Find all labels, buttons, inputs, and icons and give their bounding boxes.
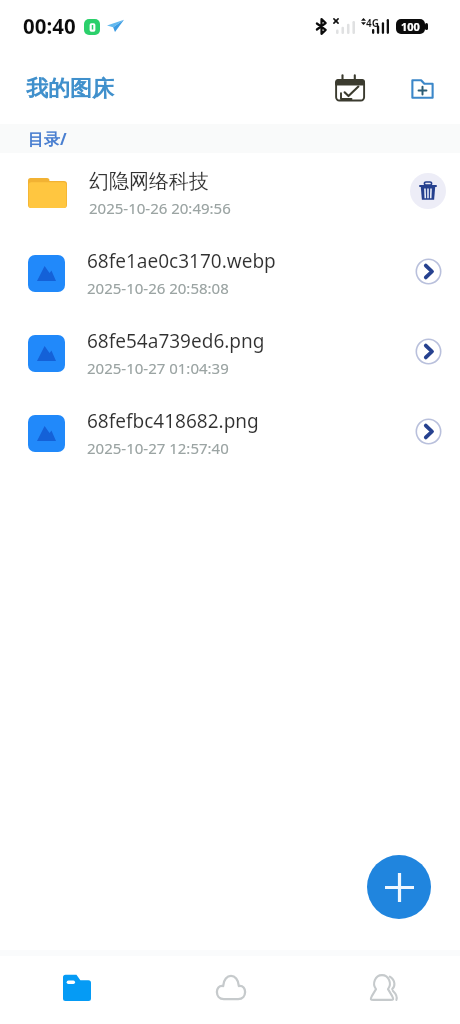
- button[interactable]: Schedule: [320, 66, 379, 110]
- staticText: 幻隐网络科技: [89, 169, 209, 194]
- staticText: 2025-10-26 20:49:56: [89, 198, 231, 218]
- staticText: 我的图床: [26, 75, 114, 103]
- button[interactable]: 68fefbc418682.png: [0, 393, 460, 473]
- button[interactable]: 幻隐网络科技: [0, 153, 460, 233]
- staticText: 100: [401, 19, 420, 34]
- button[interactable]: Open: [410, 413, 446, 449]
- staticText: 2025-10-27 12:57:40: [87, 438, 229, 458]
- staticText: 2025-10-26 20:58:08: [87, 278, 229, 298]
- staticText: 2025-10-27 01:04:39: [87, 358, 229, 378]
- staticText: 4G: [366, 16, 379, 30]
- button[interactable]: Files: [0, 956, 154, 1024]
- button[interactable]: Open: [410, 253, 446, 289]
- button[interactable]: Cloud: [154, 956, 307, 1024]
- button[interactable]: Add: [367, 855, 431, 919]
- button[interactable]: 68fe54a739ed6.png: [0, 313, 460, 393]
- staticText: 00:40: [23, 12, 76, 40]
- staticText: 68fefbc418682.png: [87, 408, 259, 434]
- button[interactable]: Delete: [410, 173, 446, 209]
- button[interactable]: Open: [410, 333, 446, 369]
- staticText: 目录/: [28, 128, 67, 150]
- staticText: 68fe54a739ed6.png: [87, 328, 265, 354]
- button[interactable]: Profile: [307, 956, 460, 1024]
- button[interactable]: 68fe1ae0c3170.webp: [0, 233, 460, 313]
- staticText: 68fe1ae0c3170.webp: [87, 248, 276, 274]
- button[interactable]: New folder: [396, 67, 448, 111]
